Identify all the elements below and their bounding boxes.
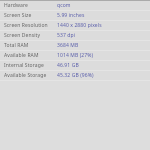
staticText: Screen Resolution	[4, 22, 48, 29]
staticText: Hardware	[4, 2, 28, 9]
staticText: 1440 x 2880 pixels	[57, 22, 102, 29]
staticText: 1014 MB (27%)	[57, 52, 94, 59]
button[interactable]: Screen Size	[0, 11, 150, 20]
staticText: 46.91 GB	[57, 62, 79, 69]
staticText: Screen Size	[4, 12, 32, 19]
staticText: 3684 MB	[57, 42, 79, 49]
button[interactable]: Hardware	[0, 1, 150, 10]
staticText: Available Storage	[4, 72, 47, 79]
button[interactable]: Available Storage	[0, 71, 150, 80]
staticText: Screen Density	[4, 32, 41, 39]
staticText: 5.99 inches	[57, 12, 85, 19]
staticText: Total RAM	[4, 42, 29, 49]
staticText: Available RAM	[4, 52, 39, 59]
staticText: Internal Storage	[4, 62, 44, 69]
button[interactable]: Internal Storage	[0, 61, 150, 70]
button[interactable]: Screen Density	[0, 31, 150, 40]
staticText: 537 dpi	[57, 32, 76, 39]
button[interactable]: Available RAM	[0, 51, 150, 60]
staticText: 45.32 GB (96%)	[57, 72, 94, 79]
button[interactable]: Screen Resolution	[0, 21, 150, 30]
button[interactable]: Total RAM	[0, 41, 150, 50]
staticText: qcom	[57, 2, 71, 9]
